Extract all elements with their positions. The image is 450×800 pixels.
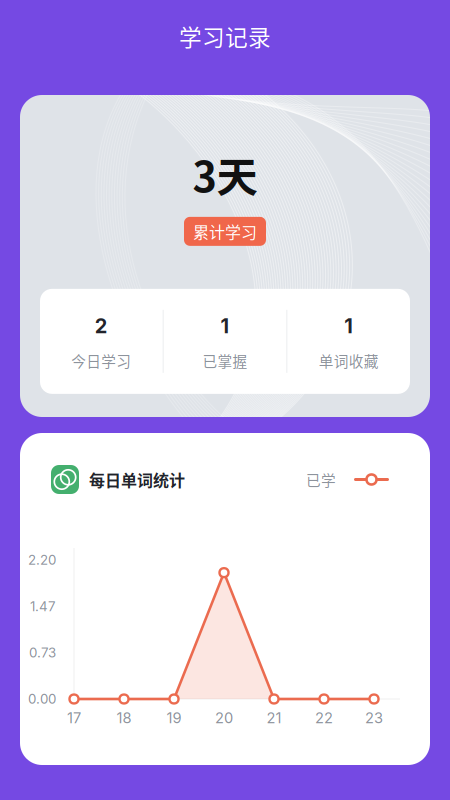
staticText: 2: [95, 314, 108, 338]
staticText: 0.73: [29, 645, 56, 661]
staticText: 2.20: [28, 552, 56, 568]
staticText: 今日学习: [71, 350, 131, 371]
staticText: 已学: [306, 469, 336, 490]
staticText: 21: [266, 709, 281, 727]
button[interactable]: 1: [287, 289, 410, 394]
staticText: 单词收藏: [319, 350, 379, 371]
staticText: 每日单词统计: [89, 468, 185, 491]
staticText: 1: [344, 314, 353, 338]
staticText: 累计学习: [193, 220, 257, 243]
staticText: 22: [315, 709, 333, 727]
button[interactable]: 1: [164, 289, 286, 394]
staticText: 17: [67, 709, 81, 727]
staticText: 1.47: [30, 598, 56, 614]
staticText: 学习记录: [179, 20, 271, 52]
staticText: 19: [166, 709, 181, 727]
staticText: 20: [215, 709, 233, 727]
staticText: 0.00: [28, 691, 56, 707]
staticText: 3天: [192, 144, 257, 204]
button[interactable]: 累计学习: [184, 217, 266, 246]
button[interactable]: 2: [40, 289, 163, 394]
staticText: 已掌握: [202, 350, 247, 371]
staticText: 1: [220, 314, 229, 338]
staticText: 18: [116, 709, 131, 727]
staticText: 23: [365, 709, 383, 727]
